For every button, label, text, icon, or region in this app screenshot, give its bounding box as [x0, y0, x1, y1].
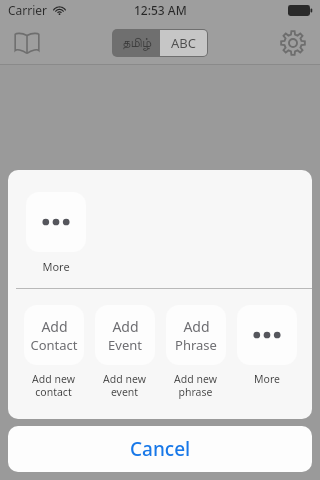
staticText: 12:53 AM [134, 2, 187, 18]
staticText: Add [112, 317, 139, 336]
staticText: Add [183, 317, 210, 336]
button[interactable]: Add [18, 305, 89, 399]
button[interactable]: Settings [272, 22, 314, 64]
button[interactable]: Dictionary [6, 22, 48, 64]
staticText: தமிழ் [122, 37, 152, 50]
staticText: Contact [30, 336, 78, 354]
staticText: Add new event [103, 372, 146, 399]
button[interactable]: Add [160, 305, 231, 399]
staticText: Add new phrase [174, 372, 217, 399]
staticText: Add [41, 317, 68, 336]
button[interactable]: Add [89, 305, 160, 399]
staticText: Cancel [130, 436, 191, 462]
staticText: ABC [171, 34, 196, 52]
staticText: Add new contact [32, 372, 75, 399]
staticText: Phrase [175, 336, 217, 354]
staticText: More [254, 372, 280, 386]
staticText: Event [108, 336, 142, 354]
button[interactable]: Cancel [8, 426, 312, 472]
staticText: More [42, 259, 70, 274]
button[interactable]: ABC [160, 30, 207, 56]
staticText: Carrier [8, 2, 48, 18]
button[interactable]: More [231, 305, 302, 386]
button[interactable]: More [20, 192, 92, 274]
button[interactable]: தமிழ் [113, 30, 160, 56]
